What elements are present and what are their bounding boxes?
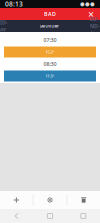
staticText: 08:13 — [5, 0, 23, 8]
staticText: SATURDAY — [39, 23, 58, 29]
staticText: 11.5° — [45, 73, 54, 79]
staticText: ●●● — [80, 1, 95, 7]
button[interactable]: 15.2° — [0, 46, 100, 58]
staticText: × — [88, 7, 94, 21]
button[interactable]: Home — [33, 209, 67, 223]
staticText: BAD — [44, 10, 56, 18]
button[interactable]: 07:30 — [0, 34, 100, 46]
button[interactable]: Previous day — [0, 20, 9, 32]
staticText: 15.2° — [45, 49, 54, 55]
staticText: 08:30 — [43, 60, 56, 68]
button[interactable]: Edit — [34, 191, 66, 209]
button[interactable]: Back — [0, 209, 33, 223]
staticText: 07:30 — [43, 36, 56, 44]
staticText: SUNDA — [90, 15, 100, 37]
button[interactable]: Add — [0, 191, 33, 209]
button[interactable]: 08:30 — [0, 58, 100, 70]
button[interactable]: Recents — [67, 209, 100, 223]
button[interactable]: Next day — [89, 20, 100, 32]
button[interactable]: Close — [85, 8, 97, 20]
button[interactable]: Delete — [67, 191, 100, 209]
button[interactable]: 11.5° — [0, 70, 100, 82]
staticText: IDAY — [0, 19, 8, 33]
